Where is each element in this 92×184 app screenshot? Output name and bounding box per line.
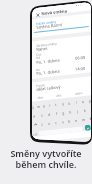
button[interactable]: d — [46, 110, 53, 118]
staticText: n — [75, 118, 78, 123]
button[interactable]: Close — [34, 6, 79, 18]
staticText: i — [76, 100, 77, 105]
button[interactable]: j — [74, 107, 81, 115]
staticText: g — [62, 110, 65, 115]
staticText: ↵ — [87, 126, 90, 130]
staticText: m — [82, 117, 86, 122]
staticText: k — [84, 108, 86, 113]
staticText: dělat celkový — [36, 84, 61, 92]
button[interactable]: c — [52, 119, 59, 126]
button[interactable]: r — [47, 101, 53, 109]
staticText: j — [77, 109, 78, 114]
staticText: a — [33, 113, 36, 118]
button[interactable]: s — [38, 111, 46, 119]
staticText: dělám — [75, 91, 83, 96]
button[interactable]: Backspace — [86, 115, 91, 123]
button[interactable]: b — [66, 117, 73, 125]
staticText: v — [62, 119, 64, 124]
staticText: x — [48, 121, 50, 126]
staticText: r — [49, 103, 51, 108]
staticText: 14:00 — [75, 66, 86, 72]
staticText: t — [55, 102, 57, 107]
staticText: w — [37, 104, 40, 109]
button[interactable]: h — [67, 108, 74, 116]
button[interactable]: x — [45, 120, 52, 127]
staticText: s — [41, 112, 43, 118]
staticText: Od — [36, 56, 40, 60]
button[interactable]: Shift — [32, 121, 39, 129]
staticText: b — [68, 118, 71, 124]
button[interactable]: Close — [34, 11, 41, 18]
staticText: Pauza — [36, 83, 45, 88]
staticText: p — [89, 98, 91, 103]
button[interactable]: Numbers — [32, 130, 38, 137]
button[interactable]: a — [32, 112, 38, 120]
staticText: h — [69, 109, 72, 115]
staticText: dělat — [37, 95, 44, 100]
button[interactable]: v — [59, 118, 66, 126]
staticText: Zkratka směny — [36, 42, 57, 48]
button[interactable]: e — [41, 102, 47, 110]
button[interactable]: y — [59, 100, 66, 108]
staticText: e — [43, 103, 46, 108]
staticText: Do — [36, 68, 40, 72]
staticText: Čas — [36, 52, 42, 57]
button[interactable]: m — [79, 116, 87, 123]
button[interactable]: t — [53, 101, 59, 108]
button[interactable]: o — [80, 98, 87, 105]
button[interactable]: f — [53, 110, 60, 117]
staticText: Po, 1. dubna — [36, 57, 60, 65]
staticText: dělá — [56, 93, 62, 98]
staticText: Nová směna — [41, 8, 68, 17]
staticText: Směna Ranní — [36, 22, 62, 31]
button[interactable]: z — [39, 120, 45, 128]
staticText: f — [56, 111, 58, 116]
staticText: d — [48, 112, 51, 117]
button[interactable]: w — [35, 103, 41, 110]
button[interactable]: i — [73, 98, 80, 106]
button[interactable]: k — [80, 107, 88, 114]
staticText: z — [41, 121, 43, 127]
staticText: 06:00 — [75, 55, 86, 61]
button[interactable]: u — [66, 99, 73, 107]
staticText: Po, 1. dubna — [36, 68, 60, 76]
button[interactable]: g — [60, 109, 67, 117]
button[interactable]: Space — [39, 126, 83, 136]
button[interactable]: q — [32, 103, 36, 111]
staticText: ?123 — [32, 132, 38, 136]
button[interactable]: Po, 1. dubna — [36, 55, 86, 65]
staticText: o — [82, 99, 85, 104]
button[interactable]: Po, 1. dubna — [36, 66, 86, 76]
staticText: c — [55, 120, 57, 125]
staticText: Ranní — [36, 46, 49, 53]
staticText: q — [32, 104, 34, 110]
staticText: u — [68, 100, 71, 106]
staticText: Název směny — [36, 20, 56, 26]
staticText: Směny vytvoříte během chvíle. — [10, 147, 82, 170]
staticText: y — [62, 101, 64, 106]
button[interactable]: n — [73, 117, 80, 124]
button[interactable]: Enter — [84, 124, 91, 131]
button[interactable]: p — [86, 97, 91, 105]
